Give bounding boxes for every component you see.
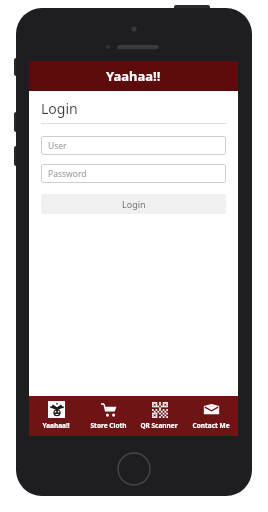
staticText: Store Cloth [90, 421, 127, 430]
button[interactable]: Store Cloth [83, 396, 133, 436]
button[interactable]: Yaahaa home [31, 396, 81, 436]
other: Store Cloth [100, 401, 117, 418]
staticText: Yaahaa!! [106, 67, 161, 85]
other: Contact Me [203, 401, 220, 418]
staticText: Contact Me [192, 421, 230, 430]
staticText: QR Scanner [140, 421, 178, 430]
button[interactable]: User [41, 136, 226, 155]
other: Yaahaa home [48, 401, 65, 418]
staticText: User [48, 140, 67, 152]
staticText: Password [48, 168, 87, 180]
staticText: Login [122, 198, 146, 210]
button[interactable]: Login [41, 194, 226, 214]
button[interactable]: QR Scanner [134, 396, 184, 436]
staticText: Yaahaa!! [42, 421, 70, 430]
staticText: Login [41, 99, 78, 118]
button[interactable]: Password [41, 164, 226, 183]
button[interactable]: Contact Me [186, 396, 236, 436]
other: QR Scanner [152, 402, 168, 418]
